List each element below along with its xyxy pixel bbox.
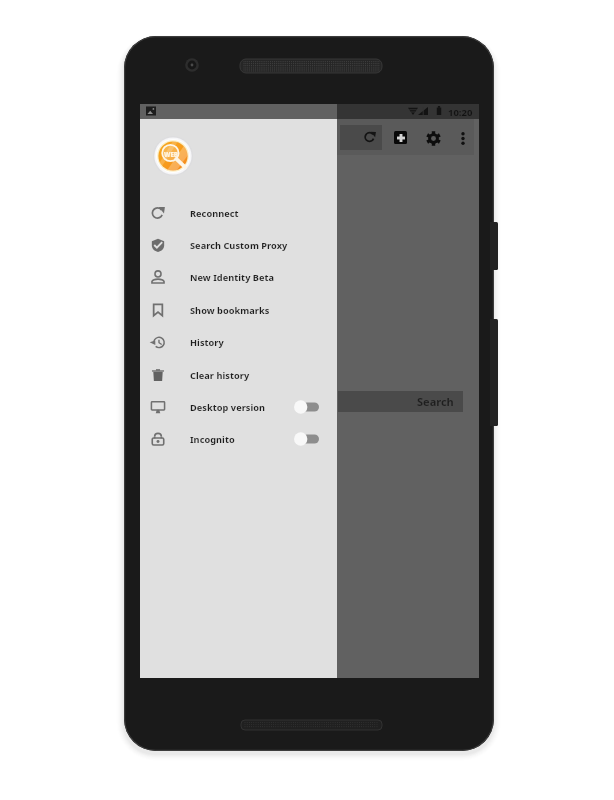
button[interactable]: Search [338, 391, 463, 412]
button[interactable]: Reconnect [140, 197, 337, 229]
staticText: Show bookmarks [190, 304, 270, 317]
button[interactable]: Refresh [340, 125, 382, 150]
staticText: Search Custom Proxy [190, 239, 288, 252]
button[interactable]: Settings [421, 126, 445, 150]
button[interactable]: History [140, 326, 337, 358]
button[interactable]: Desktop version [140, 391, 337, 423]
staticText: Incognito [190, 433, 235, 446]
button[interactable]: Clear history [140, 359, 337, 391]
button[interactable]: Incognito [140, 423, 337, 455]
staticText: WEB [164, 150, 178, 158]
button[interactable]: New Identity Beta [140, 261, 337, 293]
staticText: Search [417, 394, 454, 409]
button[interactable]: Search Custom Proxy [140, 229, 337, 261]
staticText: Clear history [190, 369, 250, 382]
staticText: History [190, 336, 224, 349]
staticText: New Identity Beta [190, 271, 275, 284]
staticText: 10:20 [448, 106, 473, 119]
staticText: Desktop version [190, 401, 266, 414]
button[interactable]: Show bookmarks [140, 294, 337, 326]
button[interactable]: New tab [394, 131, 407, 144]
staticText: Reconnect [190, 207, 239, 220]
button[interactable]: More options [451, 126, 475, 150]
